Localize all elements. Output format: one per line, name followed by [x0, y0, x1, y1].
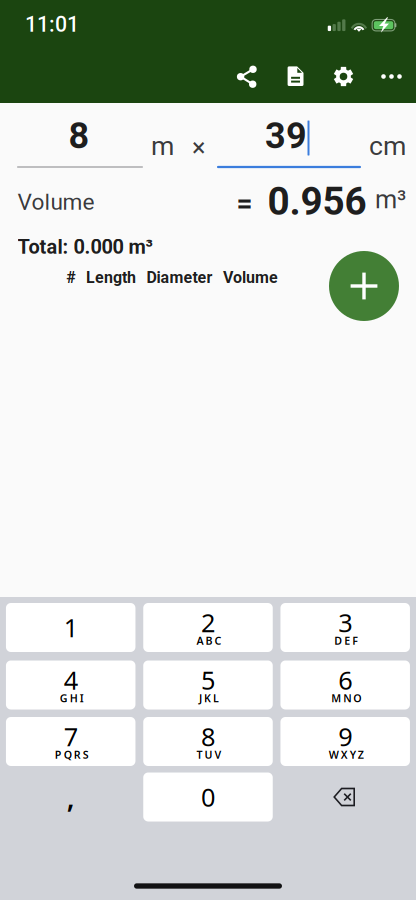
button[interactable]: Delete — [280, 772, 410, 821]
staticText: × — [192, 133, 206, 162]
staticText: Diameter — [146, 268, 212, 287]
staticText: 39 — [265, 115, 307, 157]
staticText: 0.956 — [267, 179, 366, 224]
staticText: m³ — [375, 185, 406, 214]
staticText: DEF — [334, 633, 358, 648]
button[interactable]: 7 — [6, 717, 135, 766]
button[interactable]: 0 — [143, 772, 273, 821]
staticText: WXYZ — [329, 747, 364, 762]
button[interactable]: 1 — [6, 603, 135, 652]
button[interactable]: 6 — [280, 660, 410, 709]
staticText: 8 — [201, 720, 215, 753]
staticText: PQRS — [55, 747, 89, 762]
button[interactable]: 9 — [280, 717, 410, 766]
button[interactable]: 3 — [280, 603, 410, 652]
staticText: = — [236, 187, 252, 219]
button[interactable]: 8 — [143, 717, 273, 766]
button[interactable]: Add — [329, 251, 399, 321]
button[interactable]: , — [6, 772, 135, 821]
staticText: 11:01 — [25, 12, 79, 37]
staticText: TUV — [196, 747, 221, 762]
staticText: 7 — [64, 720, 78, 753]
staticText: 6 — [338, 663, 352, 697]
button[interactable]: More options — [369, 54, 413, 98]
staticText: Volume — [223, 268, 278, 287]
staticText: m — [151, 130, 174, 162]
staticText: 1 — [64, 611, 78, 644]
button[interactable]: Share — [225, 54, 269, 98]
button[interactable]: 4 — [6, 660, 135, 709]
staticText: Volume — [17, 189, 94, 215]
staticText: GHI — [60, 691, 84, 705]
staticText: Total: 0.000 m³ — [17, 235, 152, 259]
staticText: 9 — [338, 720, 352, 753]
staticText: MNO — [331, 691, 361, 705]
staticText: 5 — [201, 663, 215, 697]
button[interactable]: 5 — [143, 660, 273, 709]
staticText: , — [67, 778, 75, 816]
staticText: JKL — [199, 691, 219, 705]
staticText: cm — [369, 130, 406, 162]
staticText: # — [66, 268, 75, 287]
staticText: Length — [86, 268, 136, 287]
button[interactable]: 2 — [143, 603, 273, 652]
button[interactable]: Settings — [321, 54, 365, 98]
staticText: 8 — [68, 115, 89, 157]
staticText: 3 — [338, 606, 352, 639]
staticText: 0 — [201, 780, 215, 814]
button[interactable]: Notes — [273, 54, 317, 98]
staticText: 4 — [64, 663, 78, 697]
staticText: 2 — [201, 606, 215, 639]
staticText: ABC — [196, 633, 221, 648]
